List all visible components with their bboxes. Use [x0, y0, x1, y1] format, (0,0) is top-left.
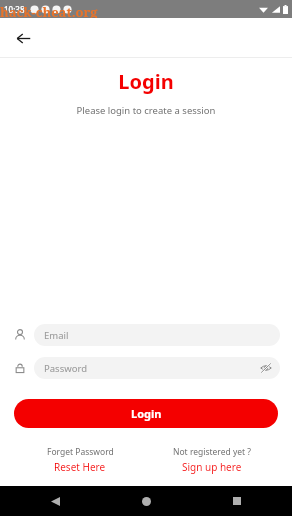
button[interactable]: Email [12, 324, 280, 346]
button[interactable]: Back [44, 490, 66, 512]
button[interactable]: Password [12, 357, 280, 379]
staticText: Sign up here [182, 460, 242, 474]
staticText: Login [131, 406, 162, 421]
button[interactable]: Toggle password visibility [258, 360, 274, 376]
staticText: hack-cheat.org [0, 3, 98, 21]
button[interactable]: Recents [226, 490, 248, 512]
button[interactable]: Login [14, 399, 278, 428]
button[interactable]: Forget Password [14, 446, 146, 474]
button[interactable]: Home [135, 490, 157, 512]
button[interactable]: Back [10, 25, 36, 51]
staticText: Password [44, 362, 87, 375]
staticText: Login [0, 68, 292, 95]
staticText: Reset Here [54, 460, 106, 474]
staticText: Email [44, 329, 69, 342]
staticText: 10:38 [4, 4, 25, 15]
staticText: Forget Password [47, 446, 114, 458]
staticText: Not registered yet ? [173, 446, 252, 458]
staticText: Please login to create a session [0, 104, 292, 117]
button[interactable]: Not registered yet ? [146, 446, 278, 474]
